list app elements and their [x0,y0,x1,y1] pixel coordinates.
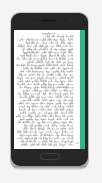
button[interactable]: Home [40,153,60,160]
